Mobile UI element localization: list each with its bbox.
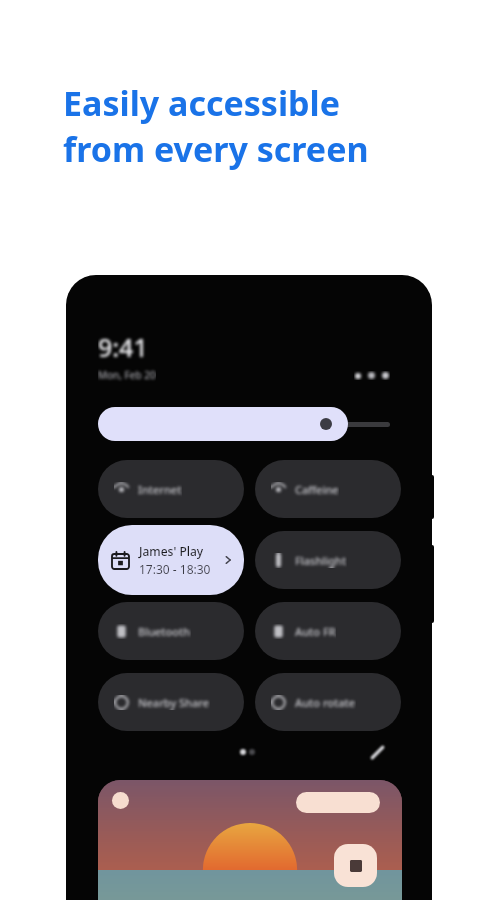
button[interactable]: Media player [98, 780, 402, 900]
staticText: Auto FR [295, 624, 336, 639]
button[interactable]: Internet [98, 460, 244, 518]
staticText: Caffeine [295, 482, 339, 497]
staticText: Flashlight [295, 553, 347, 568]
button[interactable]: Bluetooth [98, 602, 244, 660]
staticText: Nearby Share [138, 695, 210, 710]
staticText: Auto rotate [295, 695, 356, 710]
staticText: Internet [138, 482, 182, 497]
button[interactable]: James' Play [98, 525, 244, 595]
button[interactable]: Brightness [98, 407, 390, 441]
button[interactable]: Edit [366, 741, 388, 763]
button[interactable]: Pages [236, 745, 258, 759]
staticText: 17:30 - 18:30 [139, 561, 211, 577]
button[interactable]: Flashlight [255, 531, 401, 589]
staticText: Bluetooth [138, 624, 191, 639]
staticText: James' Play [139, 543, 204, 559]
button[interactable]: Caffeine [255, 460, 401, 518]
button[interactable]: Play [334, 844, 377, 887]
staticText: Easily accessible [63, 80, 340, 126]
staticText: Mon, Feb 20 [98, 368, 156, 382]
button[interactable]: Auto rotate [255, 673, 401, 731]
staticText: 9:41 [98, 330, 148, 364]
button[interactable]: Auto FR [255, 602, 401, 660]
staticText: from every screen [63, 126, 369, 172]
button[interactable]: Nearby Share [98, 673, 244, 731]
